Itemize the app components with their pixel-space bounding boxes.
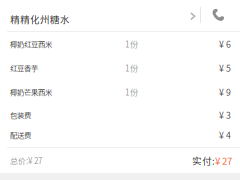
staticText: ¥ 5: [219, 62, 231, 74]
staticText: ¥ 27: [215, 153, 232, 167]
staticText: ¥ 6: [219, 38, 231, 50]
staticText: 总价:¥ 27: [10, 155, 42, 166]
staticText: ¥ 9: [219, 86, 231, 98]
staticText: 配送费: [10, 130, 31, 140]
button[interactable]: 拨打商家电话: [201, 8, 240, 29]
staticText: 1份: [125, 86, 138, 98]
staticText: 椰奶红豆西米: [10, 39, 52, 49]
staticText: 包装费: [10, 110, 31, 120]
staticText: 实付:: [192, 153, 215, 167]
button[interactable]: 精精化州糖水: [0, 12, 200, 26]
staticText: 1份: [125, 62, 138, 74]
staticText: 1份: [125, 38, 138, 50]
staticText: 椰奶芒果西米: [10, 87, 52, 97]
staticText: 红豆香芋: [10, 63, 38, 73]
staticText: 精精化州糖水: [10, 12, 70, 26]
staticText: ¥ 4: [219, 129, 231, 141]
staticText: ¥ 3: [219, 109, 231, 121]
